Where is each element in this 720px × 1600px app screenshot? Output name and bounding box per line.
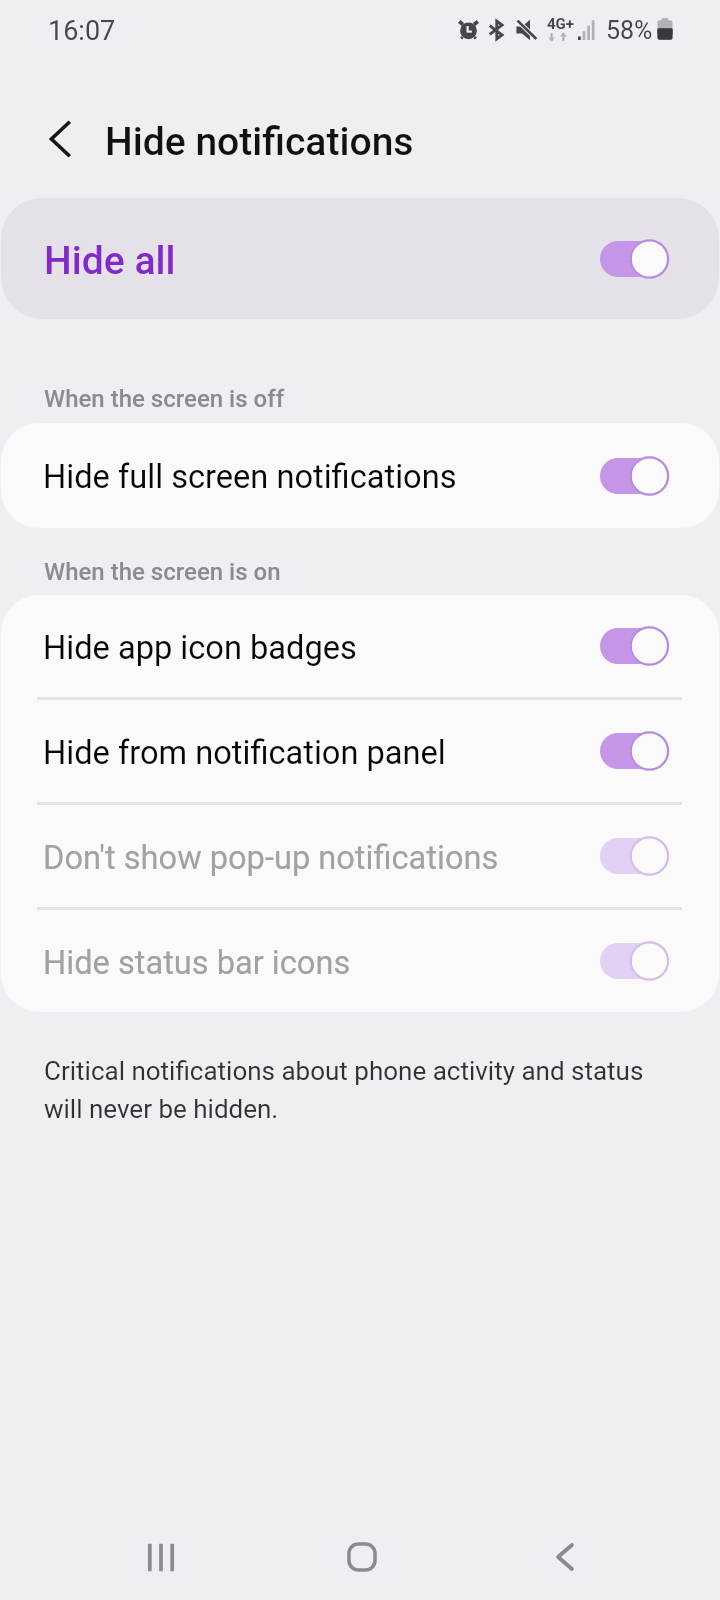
button[interactable]: Toggle: [577, 223, 669, 295]
button[interactable]: Toggle: [577, 715, 669, 787]
button[interactable]: Hide from notification panel: [1, 700, 719, 802]
button[interactable]: Toggle: [577, 925, 669, 997]
staticText: Hide app icon badges: [43, 629, 577, 667]
button[interactable]: Back: [517, 1514, 613, 1600]
staticText: Hide all: [44, 238, 577, 284]
staticText: Hide notifications: [105, 119, 414, 165]
staticText: 4G+: [547, 15, 575, 33]
staticText: Hide from notification panel: [43, 734, 577, 772]
button[interactable]: Don't show pop-up notifications: [1, 805, 719, 907]
staticText: Don't show pop-up notifications: [43, 839, 577, 877]
button[interactable]: Hide status bar icons: [1, 910, 719, 1012]
staticText: Critical notifications about phone activ…: [44, 1056, 680, 1124]
staticText: Hide full screen notifications: [43, 458, 577, 496]
staticText: Hide status bar icons: [43, 944, 577, 982]
button[interactable]: Recent apps: [113, 1514, 209, 1600]
button[interactable]: Hide app icon badges: [1, 595, 719, 697]
button[interactable]: Toggle: [577, 610, 669, 682]
button[interactable]: Hide all: [1, 198, 719, 319]
button[interactable]: Toggle: [577, 820, 669, 892]
button[interactable]: Toggle: [577, 440, 669, 512]
staticText: 58%: [606, 16, 653, 45]
button[interactable]: Home: [314, 1514, 410, 1600]
staticText: When the screen is on: [44, 558, 281, 586]
staticText: When the screen is off: [44, 385, 285, 413]
button[interactable]: Navigate up: [25, 103, 97, 175]
button[interactable]: Hide full screen notifications: [1, 423, 719, 528]
staticText: 16:07: [48, 15, 116, 47]
